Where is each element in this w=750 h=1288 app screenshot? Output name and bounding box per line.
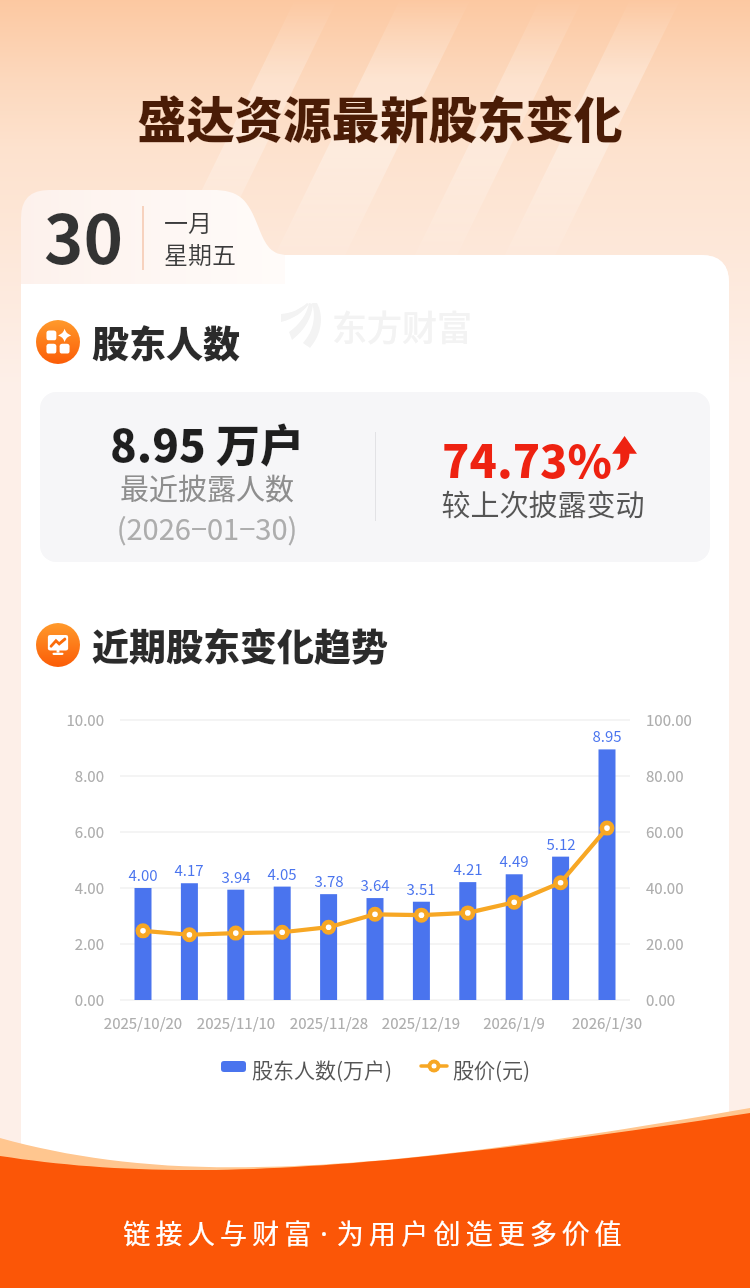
staticText: 8.95 万户	[57, 411, 357, 475]
staticText: 6.00	[0, 821, 104, 843]
staticText: 链接人与财富·为用户创造更多价值	[0, 1213, 750, 1252]
staticText: 20.00	[646, 933, 736, 955]
button[interactable]: 股东人数	[36, 315, 240, 369]
staticText: 一月	[164, 204, 284, 239]
staticText: 4.49	[489, 850, 539, 872]
staticText: 74.73%	[391, 426, 663, 491]
staticText: 100.00	[646, 709, 736, 731]
staticText: 2026/1/9	[464, 1012, 564, 1034]
staticText: 东方财富	[332, 300, 532, 351]
staticText: 3.51	[396, 878, 446, 900]
staticText: 股东人数(万户)	[252, 1054, 452, 1084]
staticText: 2025/10/20	[93, 1012, 193, 1034]
staticText: 2.00	[0, 933, 104, 955]
other: 股东人数	[36, 320, 80, 364]
staticText: 60.00	[646, 821, 736, 843]
staticText: 股价(元)	[453, 1054, 603, 1084]
staticText: 星期五	[164, 236, 294, 271]
staticText: 4.05	[257, 863, 307, 885]
staticText: 3.64	[350, 874, 400, 896]
staticText: (2026−01−30)	[57, 506, 357, 548]
staticText: 近期股东变化趋势	[92, 618, 388, 672]
staticText: 股东人数	[92, 315, 240, 369]
staticText: 80.00	[646, 765, 736, 787]
staticText: 2025/12/19	[371, 1012, 471, 1034]
staticText: 2025/11/10	[186, 1012, 286, 1034]
other: 近期股东变化趋势	[36, 623, 80, 667]
staticText: 3.94	[211, 866, 261, 888]
button[interactable]: 近期股东变化趋势	[36, 618, 388, 672]
staticText: 8.00	[0, 765, 104, 787]
staticText: 最近披露人数	[57, 466, 357, 508]
staticText: 30	[44, 186, 134, 283]
staticText: 较上次披露变动	[393, 482, 693, 524]
staticText: 4.17	[164, 859, 214, 881]
staticText: 盛达资源最新股东变化	[5, 82, 750, 152]
staticText: 2026/1/30	[557, 1012, 657, 1034]
staticText: 0.00	[646, 989, 736, 1011]
staticText: 3.78	[304, 870, 354, 892]
staticText: 5.12	[536, 833, 586, 855]
staticText: 10.00	[0, 709, 104, 731]
staticText: 4.00	[118, 864, 168, 886]
staticText: 4.00	[0, 877, 104, 899]
staticText: 8.95	[582, 725, 632, 747]
staticText: 40.00	[646, 877, 736, 899]
staticText: 4.21	[443, 858, 493, 880]
staticText: 0.00	[0, 989, 104, 1011]
staticText: 2025/11/28	[279, 1012, 379, 1034]
